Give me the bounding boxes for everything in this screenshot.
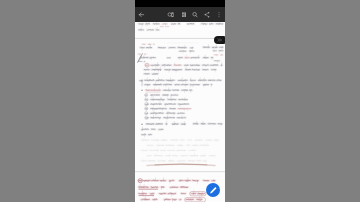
button[interactable]: Pages (179, 7, 190, 22)
button[interactable]: Back (135, 7, 147, 22)
button[interactable]: Add to Drive (167, 7, 179, 22)
button[interactable]: Search (190, 7, 202, 22)
button[interactable]: Edit (206, 183, 220, 197)
button[interactable]: More options (214, 7, 225, 22)
button[interactable]: Scroll position (214, 36, 225, 44)
button[interactable]: Share (202, 7, 214, 22)
